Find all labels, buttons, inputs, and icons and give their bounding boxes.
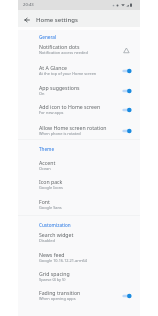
staticText: At A Glance — [39, 64, 67, 71]
staticText: Theme — [39, 146, 55, 152]
staticText: Disabled — [39, 238, 55, 243]
staticText: Icon pack — [39, 178, 63, 185]
staticText: News feed — [39, 251, 65, 258]
staticText: Google Icons — [39, 185, 63, 190]
button[interactable]: Notification dots — [18, 38, 140, 57]
staticText: Allow Home screen rotation — [39, 124, 107, 131]
staticText: For new apps — [39, 110, 64, 115]
staticText: Notification dots — [39, 43, 80, 50]
staticText: Notification access needed — [39, 50, 88, 55]
staticText: Font — [39, 198, 50, 205]
staticText: Google Sans — [39, 205, 62, 210]
button[interactable]: Fading transition — [18, 284, 140, 303]
staticText: App suggestions — [39, 84, 80, 91]
button[interactable]: App suggestions — [18, 79, 140, 98]
staticText: Google 10.16.12.21.arm64 — [39, 258, 87, 263]
staticText: Add icon to Home screen — [39, 103, 101, 110]
button[interactable]: Allow Home screen rotation — [18, 119, 140, 138]
staticText: Grid spacing — [39, 270, 70, 277]
staticText: At the top of your Home screen — [39, 71, 97, 76]
button[interactable]: News feed — [18, 246, 140, 265]
staticText: When opening apps — [39, 296, 76, 301]
button[interactable]: Add icon to Home screen — [18, 98, 140, 117]
staticText: General — [39, 34, 57, 40]
button[interactable]: Grid spacing — [18, 265, 140, 284]
button[interactable]: Font — [18, 193, 140, 212]
button[interactable]: Back — [21, 14, 33, 26]
staticText: Fading transition — [39, 289, 81, 296]
staticText: When phone is rotated — [39, 131, 81, 136]
button[interactable]: Search widget — [18, 226, 140, 245]
staticText: On — [39, 91, 45, 96]
staticText: Search widget — [39, 231, 74, 238]
staticText: Home settings — [36, 16, 78, 24]
staticText: Accent — [39, 159, 56, 166]
button[interactable]: Accent — [18, 154, 140, 173]
staticText: Ocean — [39, 166, 51, 171]
staticText: 20:43 — [23, 2, 34, 8]
button[interactable]: At A Glance — [18, 59, 140, 78]
staticText: Sparse (4 by 5) — [39, 277, 66, 282]
staticText: Customization — [39, 222, 71, 228]
button[interactable]: Icon pack — [18, 173, 140, 192]
